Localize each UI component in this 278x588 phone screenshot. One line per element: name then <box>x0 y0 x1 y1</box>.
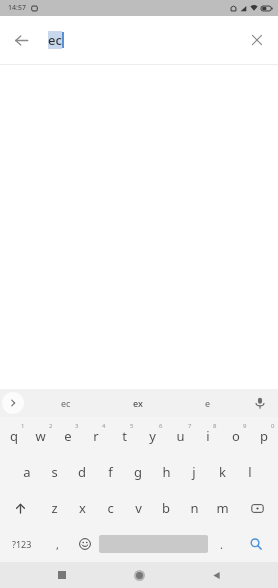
staticText: l <box>248 463 252 481</box>
button[interactable]: ec <box>40 389 92 417</box>
staticText: v <box>135 499 142 517</box>
staticText: e <box>64 427 72 445</box>
button[interactable]: d <box>68 454 96 490</box>
button[interactable]: f <box>96 454 124 490</box>
staticText: . <box>220 537 223 552</box>
button[interactable]: More suggestions <box>2 392 24 414</box>
staticText: u <box>176 427 185 445</box>
staticText: t <box>122 427 127 445</box>
button[interactable]: , <box>44 526 70 562</box>
button[interactable]: r <box>82 417 110 454</box>
button[interactable]: p <box>250 417 278 454</box>
staticText: d <box>78 463 86 481</box>
staticText: p <box>260 427 268 445</box>
staticText: h <box>162 463 171 481</box>
button[interactable]: Back <box>201 562 231 588</box>
staticText: w <box>35 427 46 445</box>
staticText: g <box>134 463 142 481</box>
staticText: ec <box>61 397 71 409</box>
staticText: x <box>79 499 86 517</box>
button[interactable]: o <box>222 417 250 454</box>
staticText: e <box>205 397 211 409</box>
button[interactable]: Home <box>124 562 154 588</box>
staticText: 7 <box>188 422 192 430</box>
staticText: 9 <box>243 422 247 430</box>
button[interactable]: u <box>166 417 194 454</box>
button[interactable]: Back <box>6 25 36 55</box>
button[interactable]: k <box>208 454 236 490</box>
staticText: 0 <box>271 422 275 430</box>
button[interactable]: j <box>180 454 208 490</box>
staticText: i <box>206 427 210 445</box>
staticText: c <box>107 499 114 517</box>
staticText: 8 <box>213 422 217 430</box>
button[interactable]: Clear <box>242 25 272 55</box>
button[interactable]: s <box>40 454 68 490</box>
staticText: z <box>51 499 58 517</box>
button[interactable]: n <box>180 490 208 526</box>
staticText: 2 <box>49 422 53 430</box>
button[interactable]: Voice input <box>248 391 272 415</box>
staticText: a <box>23 463 31 481</box>
button[interactable]: ?123 <box>0 526 44 562</box>
staticText: 14:57 <box>8 3 26 13</box>
button[interactable]: b <box>152 490 180 526</box>
staticText: q <box>10 427 18 445</box>
button[interactable]: i <box>194 417 222 454</box>
button[interactable]: z <box>41 490 68 526</box>
staticText: o <box>232 427 240 445</box>
button[interactable]: e <box>54 417 82 454</box>
button[interactable]: Shift <box>0 490 41 526</box>
staticText: ex <box>133 397 143 409</box>
button[interactable]: c <box>96 490 124 526</box>
staticText: 5 <box>130 422 134 430</box>
staticText: 6 <box>159 422 163 430</box>
button[interactable]: Backspace <box>236 490 278 526</box>
staticText: k <box>219 463 226 481</box>
staticText: b <box>162 499 170 517</box>
button[interactable]: t <box>110 417 138 454</box>
button[interactable]: l <box>236 454 264 490</box>
staticText: j <box>192 463 196 481</box>
button[interactable]: g <box>124 454 152 490</box>
staticText: y <box>149 427 156 445</box>
button[interactable]: q <box>0 417 27 454</box>
staticText: 3 <box>75 422 79 430</box>
staticText: ?123 <box>12 538 32 550</box>
staticText: s <box>51 463 58 481</box>
button[interactable]: e <box>186 389 230 417</box>
staticText: 1 <box>21 422 25 430</box>
staticText: 4 <box>102 422 106 430</box>
button[interactable]: Search <box>234 526 278 562</box>
button[interactable]: h <box>152 454 180 490</box>
staticText: r <box>93 427 99 445</box>
button[interactable]: Emoji <box>70 526 99 562</box>
staticText: , <box>56 537 59 552</box>
staticText: f <box>108 463 113 481</box>
button[interactable]: y <box>138 417 166 454</box>
button[interactable]: Recents <box>47 562 77 588</box>
button[interactable]: w <box>27 417 54 454</box>
staticText: m <box>216 499 229 517</box>
button[interactable]: . <box>208 526 234 562</box>
button[interactable]: v <box>124 490 152 526</box>
staticText: n <box>190 499 199 517</box>
button[interactable]: x <box>68 490 96 526</box>
button[interactable]: ex <box>112 389 164 417</box>
staticText: ec <box>48 31 62 49</box>
button[interactable]: m <box>208 490 236 526</box>
button[interactable]: a <box>13 454 40 490</box>
